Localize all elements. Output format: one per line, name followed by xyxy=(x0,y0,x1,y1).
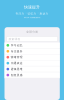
button[interactable]: 学习记忆 xyxy=(4,42,60,48)
staticText: 搜索课程 xyxy=(8,37,20,41)
staticText: 逻辑思维 xyxy=(11,67,23,71)
button[interactable]: 逻辑思维 xyxy=(4,66,60,72)
button[interactable]: 沟通表达 xyxy=(4,60,60,66)
staticText: 快速提升 xyxy=(24,5,40,9)
staticText: 专注提升 xyxy=(11,50,23,53)
staticText: 创意灵感 xyxy=(11,73,23,77)
staticText: 沟通表达 xyxy=(11,61,23,65)
staticText: 情绪管理 xyxy=(11,56,23,59)
staticText: 学习记忆 xyxy=(11,44,23,47)
button[interactable]: 情绪管理 xyxy=(4,54,60,60)
staticText: 全部分类 xyxy=(26,30,38,33)
staticText: 每天十分钟，开启你的能力提升计划 xyxy=(24,17,40,18)
button[interactable]: 创意灵感 xyxy=(4,72,60,78)
staticText: 专注力 · 记忆力 · 表达力 xyxy=(15,12,48,15)
button[interactable]: 专注提升 xyxy=(4,48,60,54)
